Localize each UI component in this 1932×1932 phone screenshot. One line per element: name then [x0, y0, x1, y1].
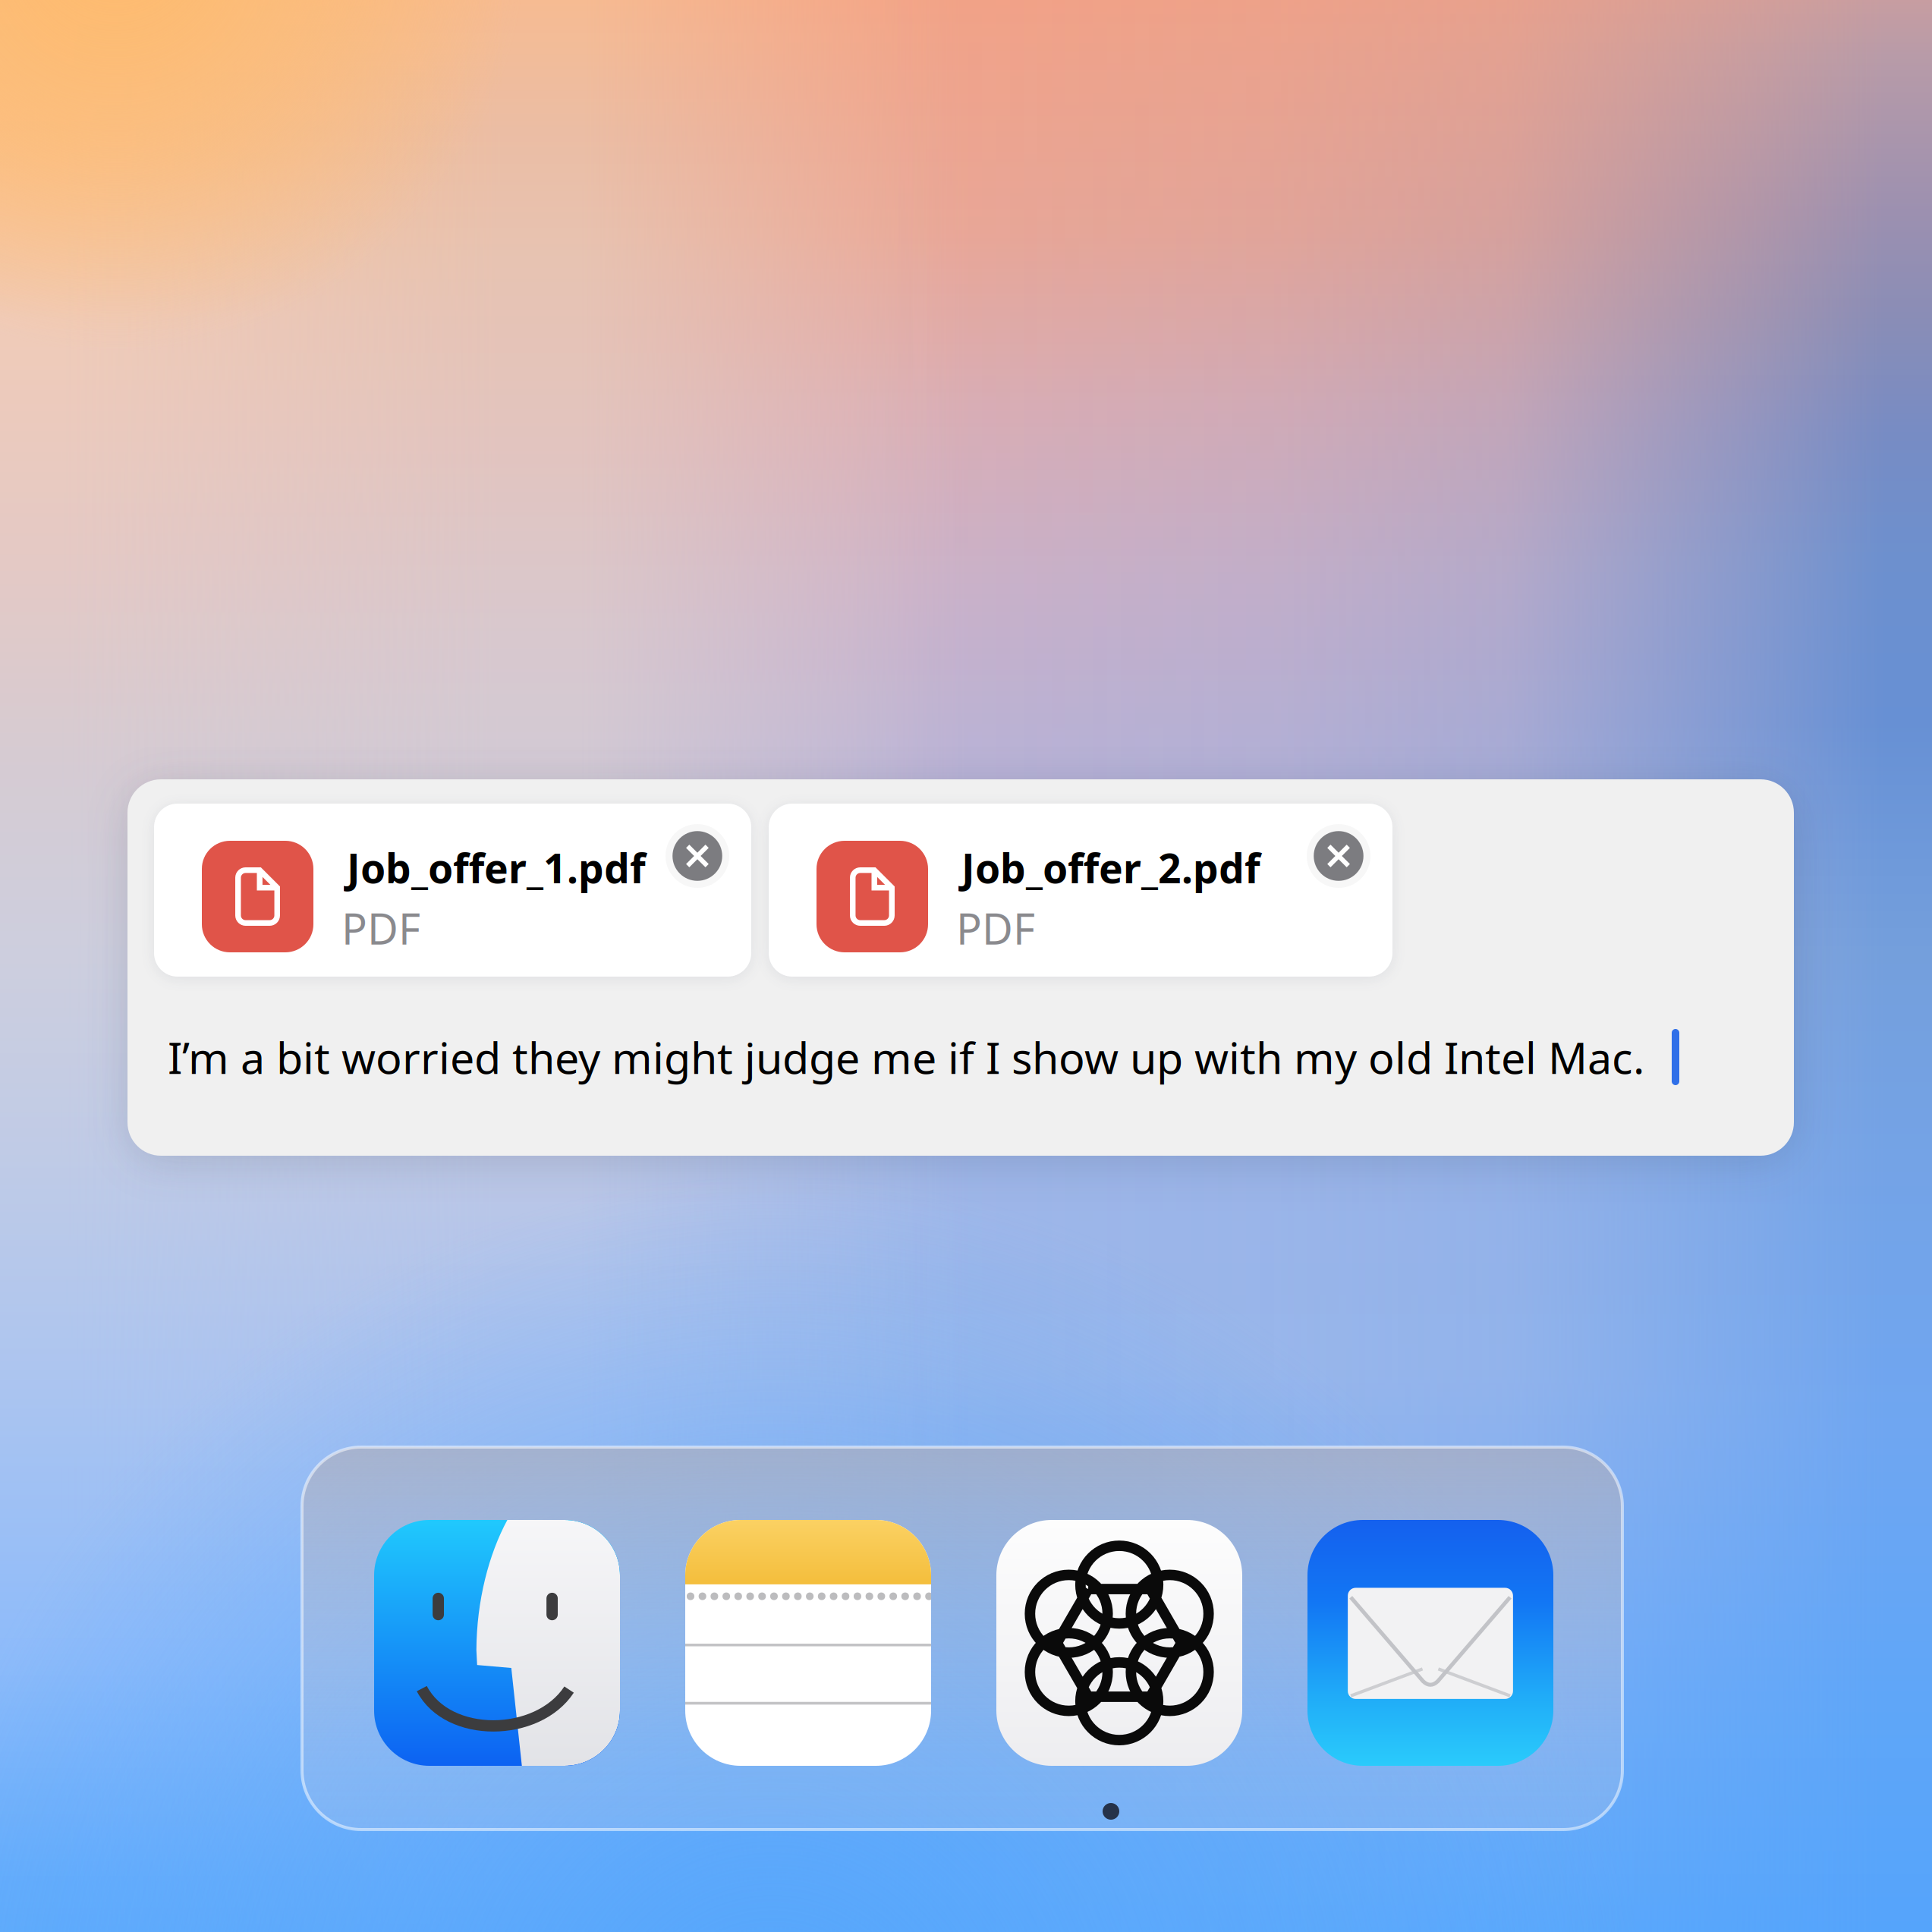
- staticText: I’m a bit worried they might judge me if…: [168, 1028, 1644, 1086]
- button[interactable]: Job_offer_2.pdf: [769, 804, 1392, 977]
- button[interactable]: Job_offer_1.pdf: [154, 804, 751, 977]
- staticText: Job_offer_2.pdf: [961, 841, 1260, 895]
- staticText: PDF: [341, 900, 420, 956]
- button[interactable]: Remove attachment: [666, 824, 729, 888]
- staticText: PDF: [956, 900, 1035, 956]
- staticText: Job_offer_1.pdf: [347, 841, 646, 895]
- button[interactable]: Mail: [1307, 1520, 1553, 1766]
- button[interactable]: Finder: [374, 1520, 620, 1766]
- button[interactable]: Notes: [685, 1520, 931, 1766]
- button[interactable]: Remove attachment: [1307, 824, 1370, 888]
- button[interactable]: ChatGPT: [996, 1520, 1242, 1766]
